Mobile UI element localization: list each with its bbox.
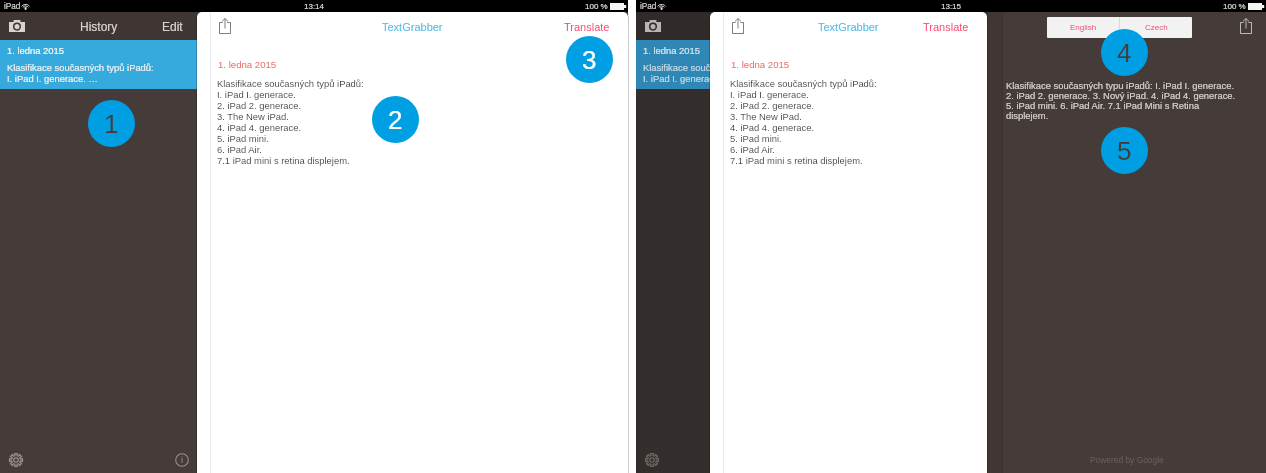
staticText: 4: [1117, 38, 1132, 67]
button[interactable]: Annotation 4: [1101, 29, 1148, 76]
staticText: 2: [388, 105, 403, 134]
button[interactable]: English: [1047, 17, 1119, 38]
button[interactable]: Annotation 5: [1101, 127, 1148, 174]
button[interactable]: Settings: [641, 449, 662, 470]
button[interactable]: Annotation 3: [566, 36, 613, 83]
button[interactable]: 1. ledna 2015: [636, 40, 833, 89]
staticText: 1. ledna 2015: [731, 59, 790, 70]
staticText: Klasifikace současných typu iPadů: I. iP…: [1006, 80, 1240, 121]
button[interactable]: Edit: [157, 17, 188, 36]
button[interactable]: Translate: [559, 19, 615, 35]
button[interactable]: Translate: [918, 19, 974, 35]
staticText: Klasifikace současných typů iPadů: I. iP…: [643, 62, 790, 84]
staticText: TextGrabber: [382, 21, 443, 33]
staticText: 13:14: [304, 2, 325, 11]
staticText: 100 %: [585, 2, 608, 11]
staticText: 1. ledna 2015: [7, 45, 64, 56]
button[interactable]: 1. ledna 2015: [0, 40, 197, 89]
button[interactable]: Annotation 1: [88, 100, 135, 147]
staticText: 100 %: [1223, 2, 1246, 11]
button[interactable]: Camera: [4, 15, 30, 37]
button[interactable]: Settings: [5, 449, 26, 470]
staticText: History: [80, 20, 118, 33]
button[interactable]: Share: [727, 13, 749, 35]
button[interactable]: Annotation 2: [372, 96, 419, 143]
button[interactable]: TextGrabber: [813, 19, 884, 35]
staticText: iPad: [4, 2, 21, 11]
button[interactable]: Share: [214, 13, 236, 35]
staticText: 1: [104, 109, 119, 138]
staticText: Translate: [564, 21, 610, 33]
staticText: Klasifikace současných typů iPadů: I. iP…: [730, 78, 877, 166]
staticText: 3: [582, 45, 597, 74]
button[interactable]: Share translation: [1235, 13, 1257, 35]
button[interactable]: Czech: [1120, 17, 1192, 38]
button[interactable]: History: [74, 17, 124, 36]
staticText: TextGrabber: [818, 21, 879, 33]
staticText: 13:15: [941, 2, 962, 11]
staticText: Klasifikace současných typů iPadů: I. iP…: [7, 62, 154, 84]
button[interactable]: Camera: [640, 15, 666, 37]
staticText: 5: [1117, 136, 1132, 165]
staticText: i: [181, 455, 183, 465]
staticText: 1. ledna 2015: [218, 59, 277, 70]
staticText: Czech: [1145, 23, 1168, 32]
staticText: Powered by Google: [1090, 455, 1164, 464]
button[interactable]: Info: [171, 449, 192, 470]
staticText: Translate: [923, 21, 969, 33]
staticText: Edit: [162, 20, 183, 33]
staticText: 1. ledna 2015: [643, 45, 700, 56]
button[interactable]: TextGrabber: [377, 19, 448, 35]
staticText: Klasifikace současných typů iPadů: I. iP…: [217, 78, 364, 166]
staticText: English: [1070, 23, 1097, 32]
staticText: iPad: [640, 2, 657, 11]
